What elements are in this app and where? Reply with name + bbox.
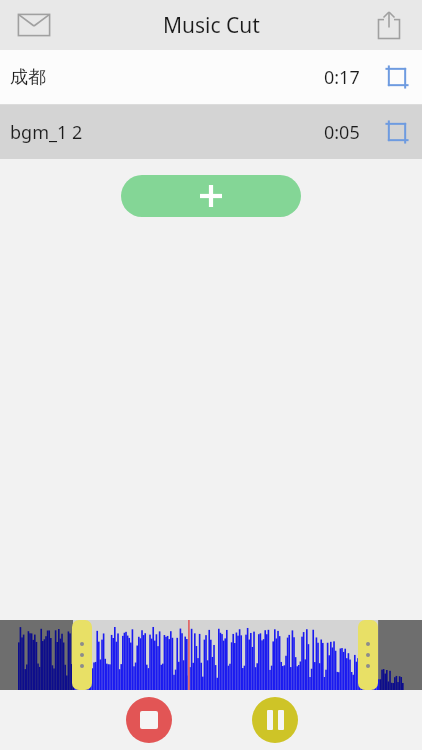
staticText: 成都 [10, 66, 324, 89]
button[interactable]: Crop [372, 105, 422, 159]
button[interactable]: Mail [8, 2, 60, 48]
button[interactable]: bgm_1 2 [0, 105, 422, 159]
staticText: 0:17 [324, 65, 360, 90]
button[interactable]: Waveform editor [0, 620, 422, 690]
button[interactable]: Share [366, 2, 412, 48]
staticText: Music Cut [163, 11, 260, 40]
staticText: bgm_1 2 [10, 120, 324, 145]
button[interactable]: Trim handle [72, 620, 92, 690]
button[interactable]: 成都 [0, 50, 422, 104]
staticText: 0:05 [324, 120, 360, 145]
button[interactable]: Trim handle [358, 620, 378, 690]
button[interactable]: Add track [121, 175, 301, 217]
button[interactable]: Stop [126, 697, 172, 743]
button[interactable]: Crop [372, 50, 422, 104]
button[interactable]: Pause [252, 697, 298, 743]
